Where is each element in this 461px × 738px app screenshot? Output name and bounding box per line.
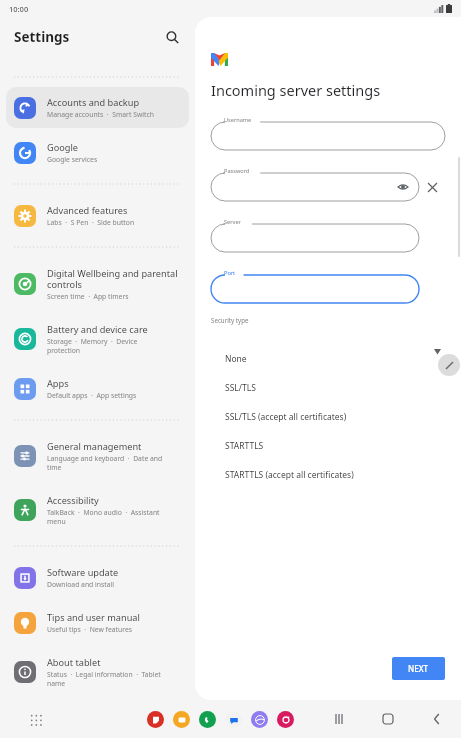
staticText: Battery and device care [47,323,148,336]
button[interactable]: files [173,711,190,728]
staticText: Apps [47,377,69,390]
staticText: Download and install [47,580,115,589]
staticText: None [225,353,247,365]
staticText: General management [47,440,142,453]
button[interactable]: Accessibility [6,485,189,535]
staticText: Server [224,218,241,226]
button[interactable]: Advanced features [6,195,189,236]
button[interactable]: Clear [419,167,445,201]
button[interactable]: Search [161,26,183,48]
staticText: Language and keyboard · Date and time [47,454,163,472]
button[interactable]: camera [277,711,294,728]
button[interactable]: General management [6,431,189,481]
staticText: Google [47,141,79,154]
button[interactable]: SSL/TLS (accept all certificates) [210,402,422,431]
button[interactable]: Digital Wellbeing and parental controls [6,258,189,310]
button[interactable]: Home [378,709,398,729]
button[interactable]: SSL/TLS [210,373,422,402]
staticText: About tablet [47,656,101,669]
button[interactable]: None [210,344,422,373]
button[interactable]: msg [225,711,242,728]
button[interactable]: About tablet [6,647,189,697]
staticText: Port [224,269,236,277]
staticText: Screen time · App timers [47,292,129,301]
staticText: 10:00 [9,4,29,14]
staticText: Labs · S Pen · Side button [47,218,135,227]
staticText: Password [224,167,250,175]
staticText: Software update [47,566,119,579]
staticText: Useful tips · New features [47,625,133,634]
staticText: Settings [14,28,70,46]
staticText: SSL/TLS (accept all certificates) [225,411,347,423]
staticText: Incoming server settings [211,80,381,100]
button[interactable]: Recents [329,709,349,729]
button[interactable]: STARTTLS [210,431,422,460]
staticText: Tips and user manual [47,611,140,624]
staticText: Storage · Memory · Device protection [47,337,138,355]
staticText: SSL/TLS [225,382,256,394]
button[interactable]: All apps [25,709,45,729]
button[interactable]: Battery and device care [6,314,189,364]
button[interactable]: Back [427,709,447,729]
staticText: Default apps · App settings [47,391,137,400]
button[interactable]: STARTTLS (accept all certificates) [210,460,422,489]
button[interactable]: Server [211,218,419,252]
staticText: Manage accounts · Smart Switch [47,110,154,119]
staticText: TalkBack · Mono audio · Assistant menu [47,508,160,526]
button[interactable]: Port [211,269,419,303]
button[interactable]: Tips and user manual [6,602,189,643]
button[interactable]: NEXT [392,657,445,680]
button[interactable]: Show password [397,181,409,193]
button[interactable]: Google [6,132,189,173]
button[interactable]: Password [211,167,419,201]
staticText: Username [224,116,252,124]
staticText: STARTTLS (accept all certificates) [225,469,354,481]
staticText: Accounts and backup [47,96,140,109]
button[interactable]: Accounts and backup [6,87,189,128]
button[interactable]: Username [211,116,445,150]
staticText: Digital Wellbeing and parental controls [47,267,178,291]
staticText: STARTTLS [225,440,264,452]
button[interactable]: Apps [6,368,189,409]
button[interactable]: Edit [438,354,460,376]
button[interactable]: note [147,711,164,728]
staticText: Advanced features [47,204,128,217]
staticText: Google services [47,155,98,164]
staticText: Accessibility [47,494,99,507]
button[interactable]: browser [251,711,268,728]
staticText: Security type [211,316,249,324]
staticText: NEXT [408,663,429,674]
button[interactable]: Software update [6,557,189,598]
staticText: Status · Legal information · Tablet name [47,670,161,688]
button[interactable]: phone [199,711,216,728]
